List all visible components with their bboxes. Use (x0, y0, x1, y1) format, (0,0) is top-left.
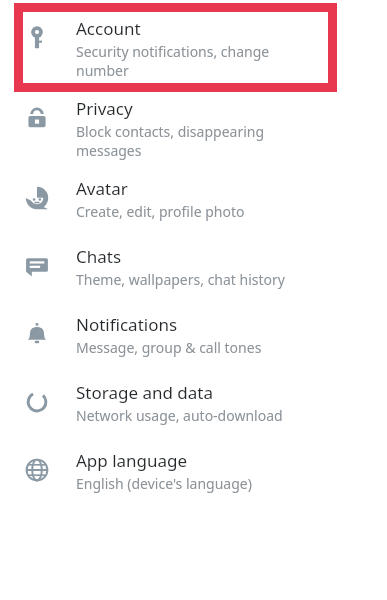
staticText: Block contacts, disappearing messages (76, 122, 265, 160)
other: Storage and data (24, 389, 50, 415)
staticText: Message, group & call tones (76, 338, 262, 357)
button[interactable]: Notifications (0, 289, 387, 357)
button[interactable]: Chats (0, 221, 387, 289)
staticText: English (device's language) (76, 474, 252, 493)
button[interactable]: Account (0, 0, 387, 80)
staticText: Security notifications, change number (76, 42, 270, 80)
staticText: Chats (76, 245, 122, 268)
button[interactable]: Avatar (0, 160, 387, 221)
staticText: Storage and data (76, 381, 214, 404)
button[interactable]: Storage and data (0, 357, 387, 425)
other: Privacy (24, 105, 50, 131)
staticText: Theme, wallpapers, chat history (76, 270, 285, 289)
staticText: Privacy (76, 97, 133, 120)
button[interactable]: App language (0, 425, 387, 493)
staticText: Avatar (76, 177, 128, 200)
staticText: Account (76, 17, 141, 40)
other: Notifications (24, 321, 50, 347)
other: App language (24, 457, 50, 483)
staticText: Network usage, auto-download (76, 406, 283, 425)
button[interactable]: Privacy (0, 80, 387, 160)
staticText: Create, edit, profile photo (76, 202, 245, 221)
other: Avatar (24, 185, 50, 211)
staticText: App language (76, 449, 188, 472)
staticText: Notifications (76, 313, 178, 336)
other: Chats (24, 253, 50, 279)
other: Account (24, 25, 50, 51)
